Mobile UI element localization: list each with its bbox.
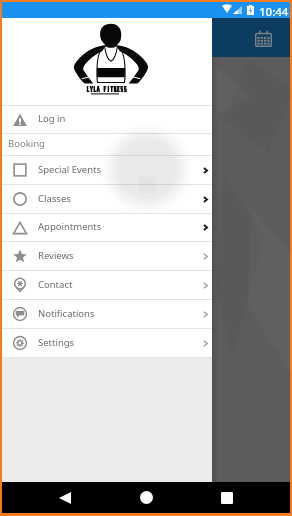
button[interactable]: Reviews [2, 242, 212, 270]
staticText: Booking [8, 137, 45, 150]
staticText: Notifications [38, 307, 95, 320]
staticText: Special Events [38, 163, 101, 176]
button[interactable]: Log in [2, 106, 212, 133]
staticText: Reviews [38, 249, 74, 262]
staticText: 10:44 [259, 4, 289, 20]
button[interactable]: Classes [2, 185, 212, 213]
button[interactable]: Back [47, 482, 83, 513]
button[interactable]: Contact [2, 271, 212, 299]
button[interactable]: Calendar [255, 30, 272, 47]
staticText: Classes [38, 192, 71, 205]
button[interactable]: Special Events [2, 156, 212, 184]
staticText: Log in [38, 112, 66, 125]
button[interactable]: Recent apps [209, 482, 245, 513]
button[interactable]: Notifications [2, 300, 212, 328]
staticText: Contact [38, 278, 73, 291]
staticText: Settings [38, 336, 75, 349]
button[interactable]: Home [128, 482, 164, 513]
button[interactable]: Appointments [2, 214, 212, 241]
staticText: Appointments [38, 220, 102, 233]
button[interactable]: Settings [2, 329, 212, 357]
